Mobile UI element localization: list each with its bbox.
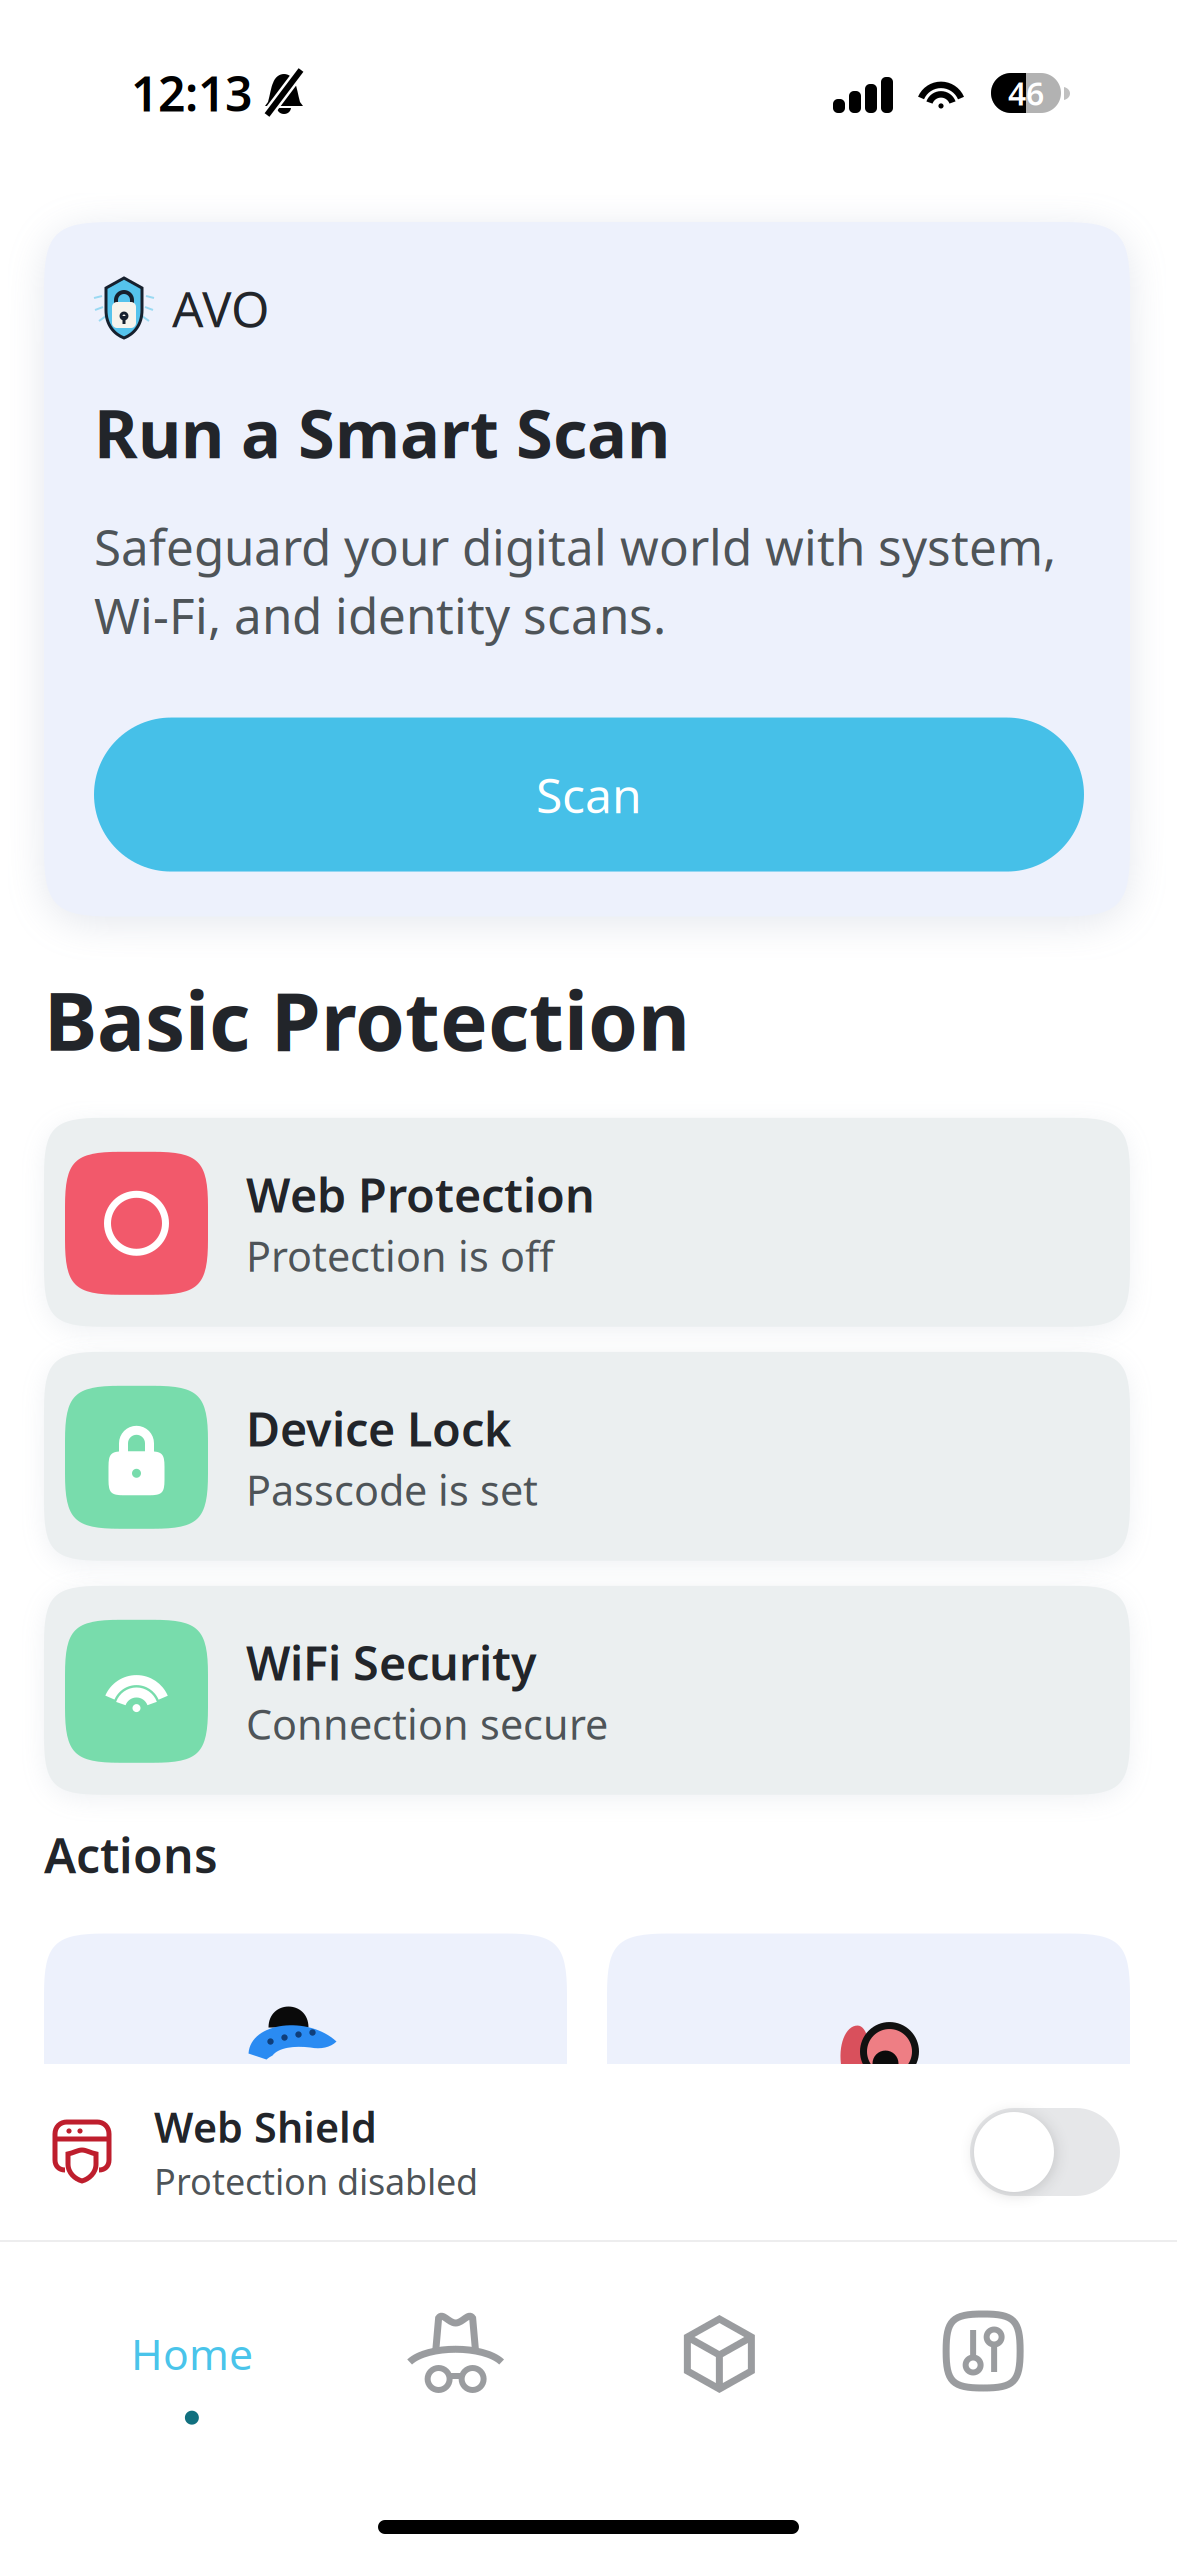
button[interactable]: Apps <box>587 2242 851 2560</box>
button[interactable]: Settings <box>851 2242 1115 2560</box>
staticText: Safeguard your digital world with system… <box>94 513 1056 647</box>
button[interactable]: Web Shield <box>0 2064 1177 2240</box>
button[interactable]: Privacy <box>324 2242 588 2560</box>
button[interactable]: Scam protection <box>44 1933 567 2233</box>
staticText: WiFi Security <box>246 1631 537 1693</box>
staticText: Run a Smart Scan <box>94 388 670 476</box>
staticText: Protection is off <box>246 1228 553 1283</box>
staticText: Web Protection <box>246 1163 595 1225</box>
staticText: Passcode is set <box>246 1462 538 1517</box>
staticText: Home <box>131 2325 253 2382</box>
staticText: Scan <box>536 763 642 826</box>
button[interactable]: Web Protection <box>44 1118 1130 1327</box>
staticText: Protection disabled <box>154 2157 478 2205</box>
button[interactable]: Scan <box>94 718 1084 872</box>
button[interactable]: Device Lock <box>44 1352 1130 1561</box>
staticText: AVO <box>172 275 270 341</box>
staticText: Actions <box>44 1823 218 1886</box>
staticText: 46 <box>1008 72 1044 114</box>
button[interactable]: Identity monitoring <box>607 1933 1130 2233</box>
staticText: 12:13 <box>131 61 252 125</box>
staticText: Connection secure <box>246 1696 608 1751</box>
staticText: Web Shield <box>154 2099 377 2154</box>
staticText: Basic Protection <box>44 967 690 1073</box>
button[interactable]: Home <box>60 2242 324 2560</box>
button[interactable]: WiFi Security <box>44 1586 1130 1795</box>
staticText: Device Lock <box>246 1397 511 1459</box>
